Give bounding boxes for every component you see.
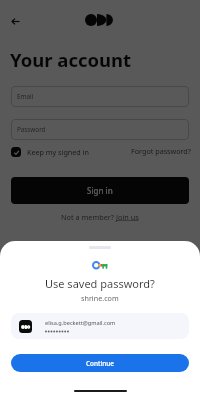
staticText: Keep my signed in — [27, 147, 89, 157]
staticText: Password — [17, 125, 46, 134]
button[interactable]: Sign in — [11, 177, 189, 204]
button[interactable]: Back — [5, 11, 25, 31]
staticText: Continue — [86, 359, 114, 368]
button[interactable]: Keep my signed in — [11, 147, 89, 157]
button[interactable]: Join us — [116, 212, 139, 222]
button[interactable]: Email — [11, 86, 189, 107]
staticText: shrine.com — [81, 293, 119, 303]
button[interactable]: elisa.g.beckett@gmail.com — [11, 313, 189, 339]
staticText: Sign in — [87, 185, 113, 196]
staticText: elisa.g.beckett@gmail.com — [45, 319, 116, 327]
staticText: Not a member? — [61, 212, 116, 222]
staticText: Use saved password? — [45, 276, 155, 291]
staticText: Your account — [10, 47, 132, 72]
staticText: Email — [17, 92, 34, 101]
button[interactable]: Continue — [11, 354, 189, 372]
button[interactable]: Forgot password? — [131, 146, 191, 156]
button[interactable]: Password — [11, 119, 189, 140]
